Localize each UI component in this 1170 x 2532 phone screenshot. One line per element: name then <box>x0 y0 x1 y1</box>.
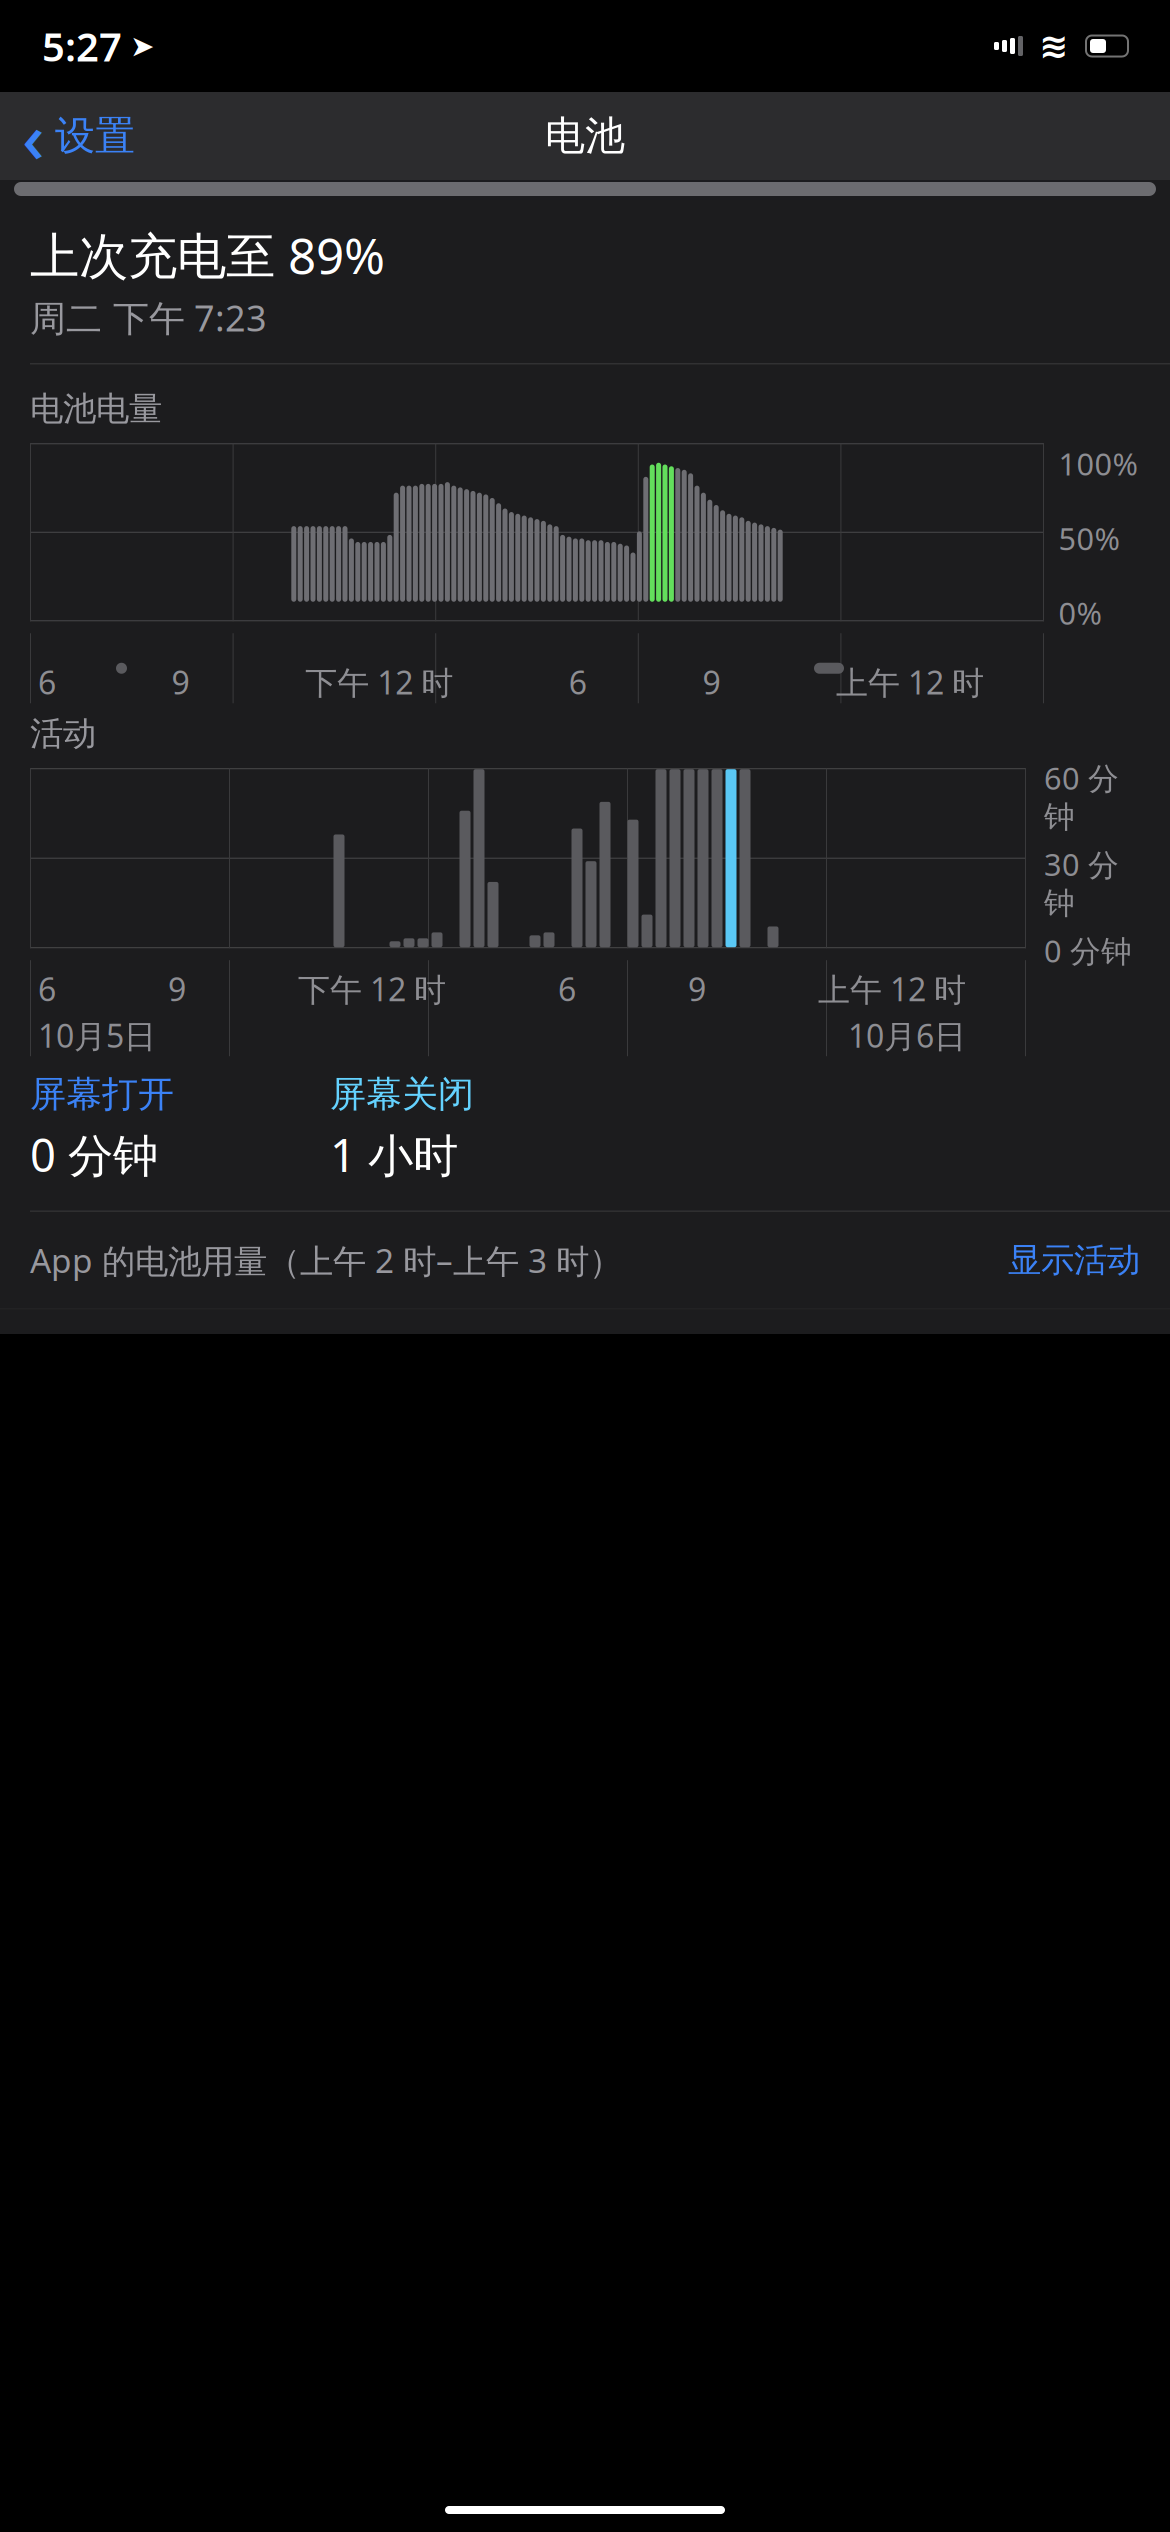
staticText: 显示活动 <box>1008 1240 1140 1280</box>
staticText: 60 分钟 <box>1044 757 1119 836</box>
staticText: 9 <box>702 661 720 703</box>
staticText: 10月5日 <box>30 1014 156 1057</box>
staticText: 0 分钟 <box>30 1124 158 1185</box>
staticText: 0% <box>1058 592 1101 633</box>
staticText: App 的电池用量（上午 2 时–上午 3 时） <box>30 1238 622 1282</box>
staticText: 电池 <box>545 111 625 160</box>
staticText: 9 <box>172 661 190 703</box>
staticText: 电池电量 <box>30 388 162 429</box>
staticText: 周二 下午 7:23 <box>30 293 267 341</box>
staticText: 活动 <box>30 713 96 754</box>
staticText: 6 <box>30 968 56 1010</box>
staticText: 下午 12 时 <box>305 661 453 703</box>
staticText: 下午 12 时 <box>298 968 446 1010</box>
staticText: 5:27 <box>42 19 122 72</box>
staticText: ‹ <box>22 90 45 182</box>
staticText: 设置 <box>55 111 135 160</box>
staticText: 9 <box>168 968 186 1010</box>
staticText: 上午 12 时 <box>836 661 984 703</box>
staticText: 6 <box>569 661 587 703</box>
staticText: 屏幕关闭 <box>330 1072 474 1116</box>
staticText: 1 小时 <box>330 1124 458 1185</box>
staticText: 30 分钟 <box>1044 844 1119 922</box>
staticText: ➤ <box>130 29 155 63</box>
staticText: 上午 12 时 <box>818 968 966 1010</box>
staticText: 屏幕打开 <box>30 1072 174 1116</box>
staticText: 6 <box>30 661 56 703</box>
staticText: 快手 <box>108 1332 188 1381</box>
button[interactable]: ◁ <box>0 1310 1170 1451</box>
staticText: 0 分钟 <box>1044 930 1132 971</box>
staticText: 上次充电至 89% <box>30 222 385 287</box>
staticText: 6 <box>558 968 576 1010</box>
staticText: ≋ <box>1039 26 1068 66</box>
staticText: 100% <box>1058 443 1137 484</box>
staticText: 9 <box>688 968 706 1010</box>
button[interactable]: 显示活动 <box>998 1234 1140 1286</box>
staticText: 50% <box>1058 518 1119 559</box>
button[interactable]: ‹ <box>0 84 135 188</box>
staticText: 10月6日 <box>848 1014 966 1057</box>
